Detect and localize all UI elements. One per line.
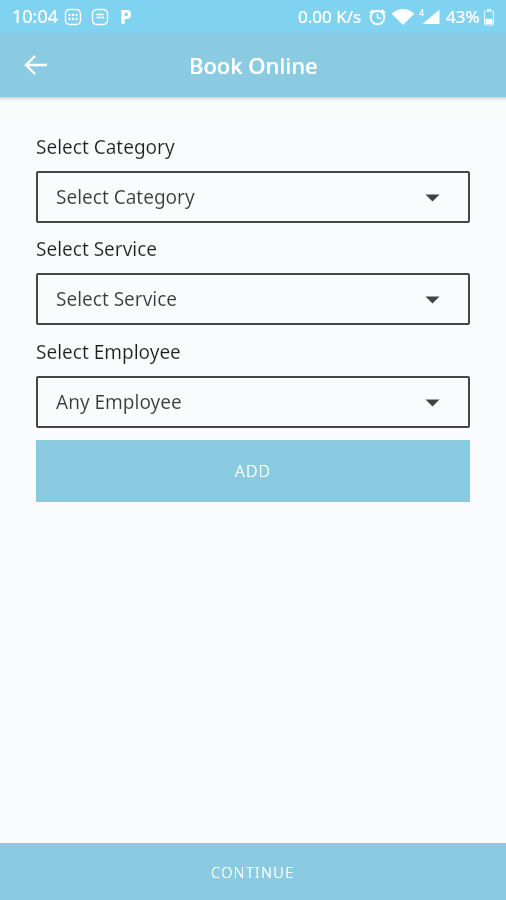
staticText: 4: [419, 6, 425, 18]
button[interactable]: Any Employee: [36, 376, 470, 428]
staticText: Select Service: [56, 286, 178, 312]
staticText: ADD: [235, 460, 272, 482]
staticText: Select Employee: [36, 339, 181, 365]
staticText: 0.00 K/s: [298, 5, 362, 28]
staticText: Select Service: [36, 236, 158, 262]
button[interactable]: [20, 49, 52, 81]
staticText: P: [120, 4, 132, 30]
button[interactable]: CONTINUE: [0, 843, 506, 900]
staticText: Any Employee: [56, 389, 182, 415]
staticText: Select Category: [56, 184, 195, 210]
button[interactable]: Select Category: [36, 171, 470, 223]
staticText: Select Category: [36, 134, 175, 160]
staticText: 10:04: [12, 4, 59, 29]
staticText: 43%: [446, 5, 480, 28]
staticText: CONTINUE: [211, 862, 295, 882]
button[interactable]: Select Service: [36, 273, 470, 325]
button[interactable]: ADD: [36, 440, 470, 502]
staticText: Book Online: [189, 50, 318, 80]
